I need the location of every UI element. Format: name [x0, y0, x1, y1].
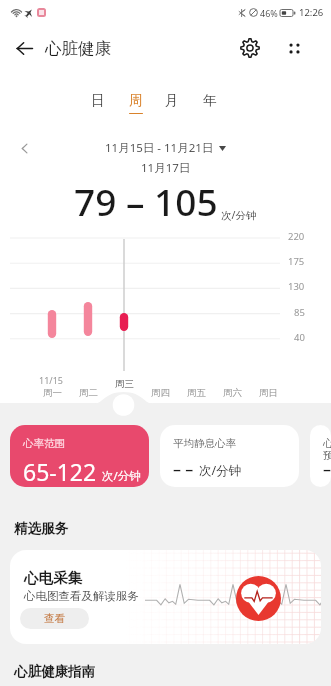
staticText: 次/分钟 [102, 468, 141, 484]
button[interactable]: 日 [81, 92, 115, 114]
staticText: 周三 [115, 378, 134, 390]
button[interactable]: 心率范围 [10, 425, 149, 487]
staticText: 平均静息心率 [173, 437, 236, 450]
staticText: 40 [294, 331, 305, 344]
button[interactable]: 年 [193, 92, 227, 114]
button[interactable]: 11月15日 - 11月21日 [105, 140, 226, 156]
staticText: 11月15日 - 11月21日 [105, 140, 214, 156]
button[interactable]: 月 [155, 92, 189, 114]
staticText: 次/分钟 [221, 208, 257, 222]
staticText: 周二 [79, 387, 98, 399]
button[interactable]: 周 [119, 92, 153, 114]
staticText: 79 – 105 [74, 176, 218, 226]
staticText: 精选服务 [14, 520, 68, 537]
button[interactable]: Previous week [16, 140, 32, 156]
button[interactable]: 平均静息心率 [160, 425, 299, 487]
staticText: 220 [288, 230, 305, 243]
staticText: 心脏健康指南 [14, 663, 95, 680]
staticText: 年 [203, 92, 217, 109]
staticText: 12:26 [299, 6, 324, 19]
staticText: 周五 [187, 387, 206, 399]
staticText: 11月17日 [141, 160, 191, 176]
button[interactable]: Settings [236, 34, 264, 62]
button[interactable]: More options [281, 35, 307, 61]
staticText: 心脏健康 [45, 38, 111, 59]
staticText: 175 [288, 255, 305, 268]
button[interactable]: 查看 [20, 608, 89, 629]
staticText: 130 [288, 280, 305, 293]
staticText: 周一 [43, 387, 62, 399]
staticText: 心率范围 [23, 437, 65, 450]
staticText: 次/分钟 [199, 462, 242, 479]
staticText: 周日 [259, 387, 278, 399]
staticText: 周 [129, 92, 143, 109]
staticText: 心率预警 [323, 437, 331, 462]
staticText: 65-122 [23, 456, 97, 487]
button[interactable]: 心率预警 [310, 425, 331, 487]
staticText: 周六 [223, 387, 242, 399]
staticText: 心电采集 [24, 569, 82, 587]
staticText: 查看 [44, 612, 65, 625]
staticText: 85 [294, 306, 305, 319]
staticText: 周四 [151, 387, 170, 399]
button[interactable]: Back [10, 34, 38, 62]
staticText: 46% [260, 7, 278, 19]
staticText: 月 [165, 92, 179, 109]
staticText: 心电图查看及解读服务 [24, 589, 139, 603]
staticText: – – [173, 458, 194, 480]
staticText: 日 [91, 92, 105, 109]
staticText: – – [323, 458, 331, 480]
button[interactable]: 心电采集 [10, 550, 321, 644]
staticText: 11/15 [39, 374, 63, 386]
